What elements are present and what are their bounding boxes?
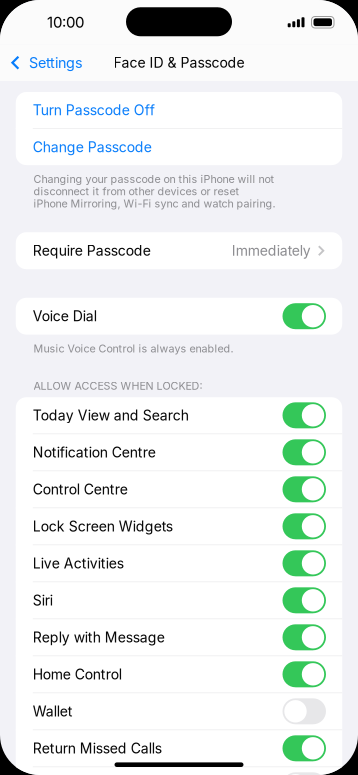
staticText: Require Passcode bbox=[33, 242, 151, 259]
button[interactable]: Today View and Search bbox=[16, 397, 342, 433]
staticText: Today View and Search bbox=[33, 407, 189, 424]
staticText: Change Passcode bbox=[33, 139, 152, 155]
staticText: Live Activities bbox=[33, 555, 124, 572]
staticText: Immediately bbox=[232, 242, 311, 259]
staticText: 10:00 bbox=[47, 13, 84, 31]
staticText: ALLOW ACCESS WHEN LOCKED: bbox=[33, 379, 202, 392]
button[interactable]: Live Activities bbox=[16, 545, 342, 581]
staticText: Reply with Message bbox=[33, 629, 165, 646]
staticText: Voice Dial bbox=[33, 308, 97, 325]
button[interactable]: Lock Screen Widgets bbox=[16, 508, 342, 544]
button[interactable]: Control Centre bbox=[16, 471, 342, 507]
staticText: Settings bbox=[29, 54, 83, 71]
button[interactable]: Settings bbox=[0, 47, 83, 78]
staticText: Home Control bbox=[33, 666, 122, 683]
button[interactable]: Home Control bbox=[16, 656, 342, 692]
staticText: Turn Passcode Off bbox=[33, 102, 155, 118]
button[interactable]: Reply with Message bbox=[16, 619, 342, 655]
button[interactable]: Change Passcode bbox=[16, 129, 342, 165]
button[interactable]: Siri bbox=[16, 582, 342, 618]
staticText: Face ID & Passcode bbox=[113, 54, 244, 71]
staticText: Siri bbox=[33, 592, 53, 609]
staticText: Notification Centre bbox=[33, 444, 156, 461]
staticText: disconnect it from other devices or rese… bbox=[33, 185, 239, 198]
button[interactable]: Require Passcode bbox=[16, 233, 342, 269]
button[interactable]: Accessories bbox=[16, 767, 342, 775]
staticText: iPhone Mirroring, Wi-Fi sync and watch p… bbox=[33, 197, 275, 210]
button[interactable]: Return Missed Calls bbox=[16, 730, 342, 766]
staticText: Lock Screen Widgets bbox=[33, 518, 173, 535]
staticText: Control Centre bbox=[33, 481, 128, 498]
button[interactable]: Voice Dial bbox=[16, 298, 342, 334]
staticText: Music Voice Control is always enabled. bbox=[33, 342, 233, 355]
staticText: Wallet bbox=[33, 703, 73, 720]
button[interactable]: Wallet bbox=[16, 693, 342, 729]
button[interactable]: Notification Centre bbox=[16, 434, 342, 470]
button[interactable]: Turn Passcode Off bbox=[16, 92, 342, 128]
staticText: Changing your passcode on this iPhone wi… bbox=[33, 173, 274, 186]
staticText: Return Missed Calls bbox=[33, 740, 162, 757]
